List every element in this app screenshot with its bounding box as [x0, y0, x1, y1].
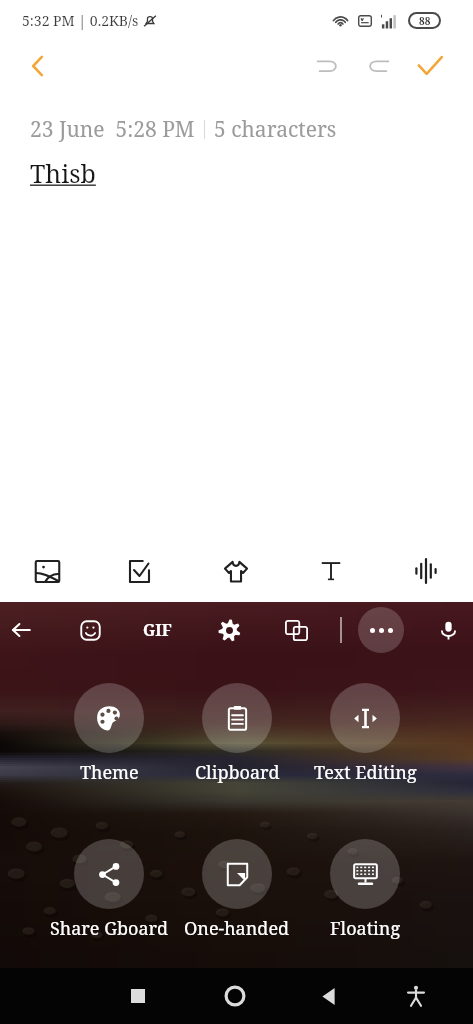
- button[interactable]: Floating: [301, 839, 429, 941]
- button[interactable]: Insert image: [0, 544, 94, 598]
- button[interactable]: Emoji: [69, 609, 111, 651]
- button[interactable]: Back: [16, 44, 60, 88]
- staticText: Theme: [80, 760, 139, 785]
- staticText: One-handed: [184, 916, 290, 941]
- button[interactable]: Back: [304, 972, 352, 1020]
- button[interactable]: Accessibility: [392, 972, 440, 1020]
- button[interactable]: Text Editing: [301, 683, 429, 785]
- staticText: 5 characters: [214, 115, 337, 144]
- button[interactable]: GIF: [136, 609, 178, 651]
- button[interactable]: Voice recording: [378, 544, 473, 598]
- button[interactable]: Undo: [301, 40, 353, 92]
- staticText: Text Editing: [314, 760, 417, 785]
- staticText: Share Gboard: [50, 916, 169, 941]
- button[interactable]: Share Gboard: [45, 839, 173, 941]
- button[interactable]: Translate: [275, 609, 317, 651]
- button[interactable]: Back: [0, 609, 42, 651]
- staticText: Thisb: [30, 156, 96, 190]
- button[interactable]: Recent apps: [114, 972, 162, 1020]
- button[interactable]: One-handed: [173, 839, 301, 941]
- button[interactable]: Settings: [208, 609, 250, 651]
- staticText: 88: [419, 14, 431, 27]
- staticText: Floating: [330, 916, 401, 941]
- button[interactable]: Theme: [45, 683, 173, 785]
- button[interactable]: Checklist: [94, 544, 188, 598]
- button[interactable]: Voice input: [427, 609, 469, 651]
- staticText: 5:32 PM | 0.2KB/s: [22, 11, 139, 30]
- staticText: Clipboard: [195, 760, 280, 785]
- button[interactable]: Stickers: [188, 544, 283, 598]
- staticText: 23 June 5:28 PM: [30, 115, 195, 144]
- button[interactable]: Redo: [353, 40, 405, 92]
- staticText: GIF: [143, 619, 172, 641]
- button[interactable]: Text format: [283, 544, 378, 598]
- button[interactable]: More options: [358, 607, 404, 653]
- button[interactable]: Done: [405, 41, 455, 91]
- button[interactable]: Home: [211, 972, 259, 1020]
- button[interactable]: Clipboard: [173, 683, 301, 785]
